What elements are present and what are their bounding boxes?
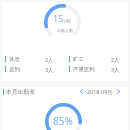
staticText: 本月出勤率: [6, 88, 35, 95]
staticText: 3人: [111, 66, 120, 73]
button[interactable]: 休息: [5, 54, 54, 64]
button[interactable]: 迟到: [5, 64, 54, 74]
button[interactable]: Previous month: [78, 87, 85, 96]
staticText: /40: [64, 18, 71, 24]
staticText: 3人: [45, 66, 54, 73]
staticText: 2人: [111, 56, 120, 63]
button[interactable]: Next month: [115, 87, 122, 96]
staticText: 2人: [45, 56, 54, 63]
button[interactable]: 旷工: [69, 54, 120, 64]
staticText: 休息: [9, 56, 20, 63]
staticText: 出勤人数: [57, 28, 73, 33]
staticText: 严重迟到: [73, 66, 95, 73]
button[interactable]: 严重迟到: [69, 64, 120, 74]
staticText: 2018-09月: [87, 88, 113, 95]
staticText: 迟到: [9, 66, 20, 73]
staticText: 15: [53, 12, 64, 24]
staticText: 85%: [53, 114, 73, 128]
staticText: 旷工: [73, 56, 84, 63]
